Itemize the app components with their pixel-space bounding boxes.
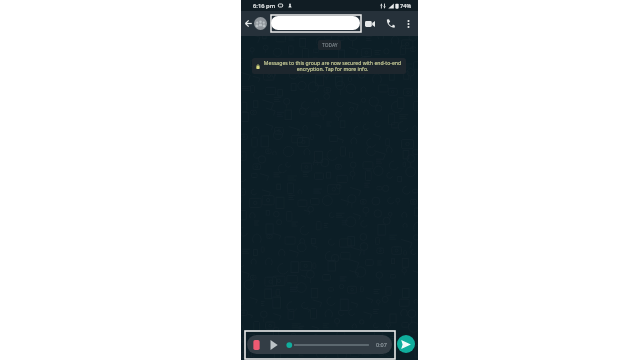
button[interactable]: Group info [271,16,360,30]
button[interactable]: Play [270,340,278,350]
staticText: Messages to this group are now secured w… [262,59,403,73]
staticText: TODAY [322,42,338,49]
button[interactable]: Video call [362,11,378,36]
button[interactable]: More options [402,11,414,36]
button[interactable]: Delete recording [253,340,260,350]
staticText: 6:16 pm [253,2,276,10]
button[interactable]: Voice call [382,11,398,36]
staticText: 0:07 [376,341,387,348]
staticText: 74% [400,2,412,10]
button[interactable]: Group photo [254,17,267,30]
button[interactable]: Back [242,11,254,36]
button[interactable]: Send [397,335,415,353]
button[interactable]: Messages to this group are now secured w… [252,58,406,74]
